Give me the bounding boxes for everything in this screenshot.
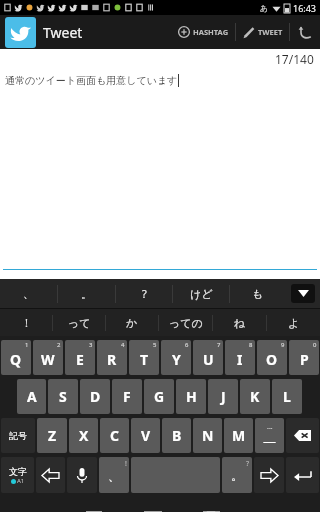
staticText: J [221, 387, 226, 406]
staticText: 4 [121, 341, 125, 349]
staticText: W [41, 350, 55, 369]
staticText: 8 [249, 341, 253, 349]
staticText: 。 [81, 287, 92, 301]
button[interactable]: ? [116, 279, 172, 308]
staticText: 。 [231, 468, 243, 483]
button[interactable]: 記号 [1, 418, 35, 453]
staticText: O [266, 350, 278, 369]
staticText: 記号 [9, 430, 27, 441]
staticText: 2 [57, 341, 61, 349]
button[interactable]: 1 [1, 340, 31, 375]
staticText: M [232, 426, 246, 445]
button[interactable]: N [193, 418, 222, 453]
button[interactable]: TWEET [236, 15, 289, 49]
button[interactable]: Voice input [67, 457, 97, 493]
button[interactable]: 、 [0, 279, 57, 308]
staticText: F [123, 387, 131, 406]
button[interactable]: G [144, 379, 174, 414]
staticText: L [283, 387, 291, 406]
button[interactable]: H [176, 379, 206, 414]
staticText: ? [246, 459, 250, 469]
staticText: HASHTAG [193, 27, 229, 37]
staticText: N [202, 426, 214, 445]
button[interactable]: 9 [257, 340, 287, 375]
staticText: 5 [153, 341, 157, 349]
staticText: T [140, 350, 149, 369]
button[interactable]: よ [267, 309, 320, 336]
button[interactable]: 3 [65, 340, 95, 375]
staticText: A [27, 387, 37, 406]
button[interactable]: J [208, 379, 238, 414]
staticText: ね [234, 316, 246, 330]
button[interactable]: 。 [58, 279, 115, 308]
button[interactable]: って [53, 309, 105, 336]
staticText: 9 [281, 341, 285, 349]
staticText: ! [25, 315, 28, 330]
staticText: 16:43 [293, 2, 317, 14]
staticText: X [79, 426, 89, 445]
staticText: I [237, 350, 243, 369]
staticText: っての [169, 316, 203, 330]
button[interactable]: F [112, 379, 142, 414]
button[interactable]: Backspace [286, 418, 319, 453]
staticText: 、 [108, 468, 120, 483]
button[interactable]: Enter [286, 457, 319, 493]
staticText: K [250, 387, 260, 406]
button[interactable]: L [272, 379, 302, 414]
button[interactable]: ! [0, 309, 52, 336]
staticText: — [263, 432, 277, 450]
staticText: V [141, 426, 151, 445]
button[interactable]: X [69, 418, 98, 453]
button[interactable]: V [131, 418, 160, 453]
button[interactable]: 0 [289, 340, 319, 375]
button[interactable]: Dash [255, 418, 284, 453]
button[interactable]: 2 [33, 340, 63, 375]
button[interactable]: A [17, 379, 46, 414]
button[interactable]: っての [159, 309, 212, 336]
button[interactable]: Z [37, 418, 67, 453]
staticText: Q [10, 350, 22, 369]
button[interactable]: D [80, 379, 110, 414]
button[interactable]: Undo [290, 15, 320, 49]
button[interactable]: Expand suggestions [286, 279, 320, 308]
button[interactable]: 通常のツイート画面も用意しています [0, 69, 320, 279]
button[interactable]: か [106, 309, 158, 336]
staticText: Z [48, 426, 57, 445]
staticText: ! [125, 459, 127, 469]
button[interactable]: K [240, 379, 270, 414]
button[interactable]: S [48, 379, 78, 414]
staticText: 1 [25, 341, 29, 349]
button[interactable]: M [224, 418, 253, 453]
staticText: C [110, 426, 119, 445]
staticText: 0 [313, 341, 317, 349]
button[interactable]: Comma [99, 457, 129, 493]
staticText: けど [190, 287, 213, 301]
staticText: よ [288, 316, 300, 330]
staticText: 、 [23, 287, 34, 301]
button[interactable]: 7 [193, 340, 223, 375]
button[interactable]: 4 [97, 340, 127, 375]
button[interactable]: けど [173, 279, 229, 308]
button[interactable]: も [230, 279, 286, 308]
button[interactable]: 5 [129, 340, 159, 375]
button[interactable]: Tweet [5, 17, 83, 48]
button[interactable]: 8 [225, 340, 255, 375]
button[interactable]: B [162, 418, 191, 453]
staticText: P [300, 350, 309, 369]
button[interactable]: HASHTAG [172, 15, 235, 49]
staticText: R [107, 350, 117, 369]
button[interactable]: ね [213, 309, 266, 336]
staticText: 6 [185, 341, 189, 349]
button[interactable]: 6 [161, 340, 191, 375]
staticText: S [59, 387, 67, 406]
staticText: G [154, 387, 165, 406]
button[interactable]: Cursor right [254, 457, 284, 493]
button[interactable]: C [100, 418, 129, 453]
button[interactable]: Cursor left [36, 457, 65, 493]
button[interactable]: Period [222, 457, 252, 493]
staticText: Y [172, 350, 181, 369]
staticText: B [172, 426, 182, 445]
button[interactable]: Switch input [1, 457, 34, 493]
staticText: か [126, 316, 138, 330]
